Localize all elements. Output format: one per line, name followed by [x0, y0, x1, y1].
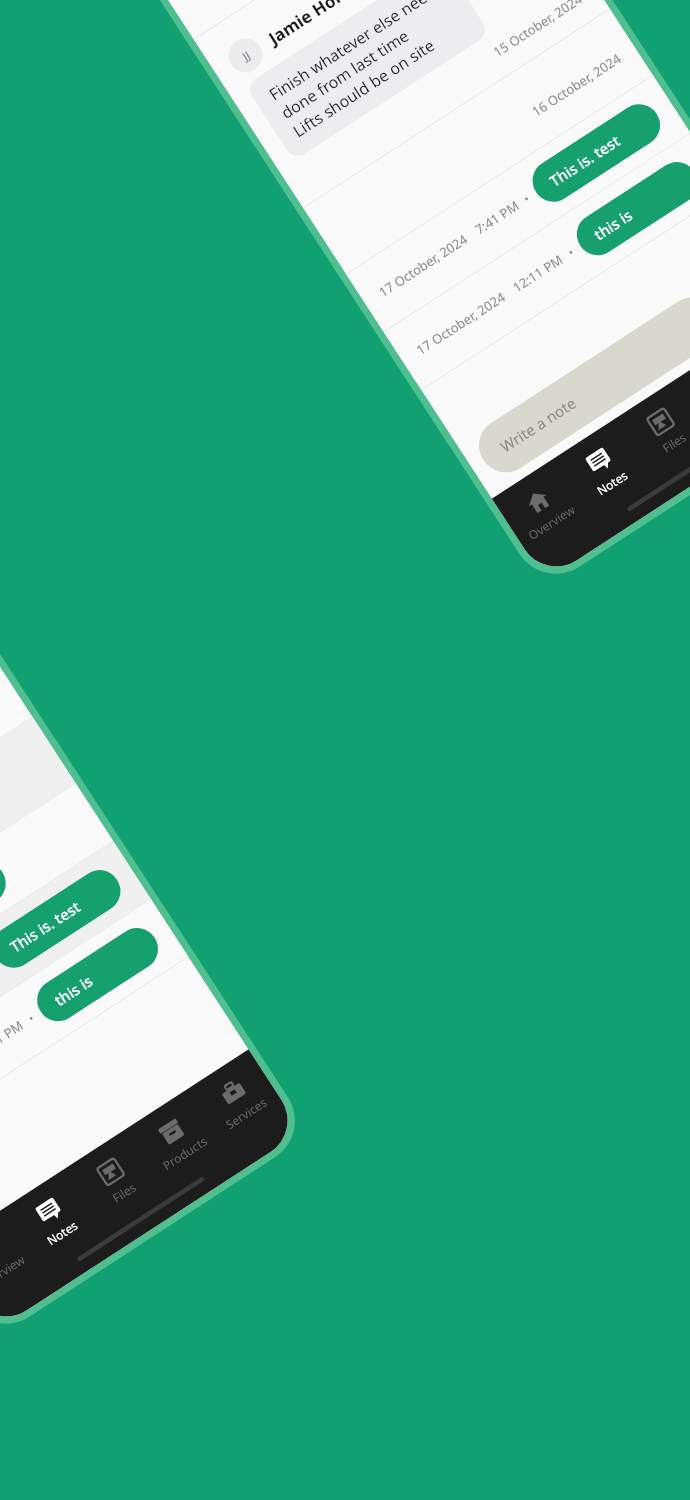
staticText: this is obaydul — [590, 173, 685, 244]
staticText: 12:11 PM — [509, 250, 567, 296]
staticText: 12:11 PM — [0, 1016, 27, 1062]
staticText: 17 October, 2024 — [413, 288, 509, 359]
button[interactable]: Files — [622, 389, 690, 473]
button[interactable]: Notes — [10, 1179, 100, 1263]
button[interactable]: needs to be — [0, 717, 75, 982]
staticText: Overview — [0, 1251, 28, 1293]
button[interactable]: Overview — [0, 1219, 38, 1303]
staticText: Files — [109, 1179, 139, 1206]
staticText: 7:41 PM — [471, 197, 522, 238]
staticText: 15 October, 2024 — [490, 0, 586, 61]
button[interactable]: Write a note — [469, 287, 690, 483]
button[interactable]: 17 October, 2024 — [346, 75, 690, 332]
staticText: done from last time — [277, 25, 413, 124]
button[interactable]: Notes — [560, 429, 650, 513]
button[interactable]: Overview — [499, 469, 588, 553]
button[interactable]: Products — [133, 1100, 222, 1183]
button[interactable]: this is obaydul — [569, 154, 690, 263]
staticText: this is obaydul — [50, 939, 145, 1010]
button[interactable]: 16 October, 2024 — [0, 841, 151, 1098]
button[interactable]: Products — [683, 350, 690, 433]
staticText: Products — [159, 1132, 210, 1173]
button[interactable]: Hi — [0, 854, 14, 918]
button[interactable]: this is obaydul — [29, 920, 166, 1029]
button[interactable]: Files — [72, 1139, 161, 1223]
button[interactable]: 17 October, 2024 — [0, 899, 188, 1156]
staticText: Finish whatever else needs — [265, 0, 446, 105]
staticText: This is. test note — [546, 115, 647, 191]
staticText: Overview — [525, 501, 578, 543]
staticText: Lifts should be on site — [289, 34, 439, 142]
staticText: Jamie Hoffman — [264, 0, 383, 50]
staticText: 17 October, 2024 — [375, 230, 471, 301]
staticText: 16 October, 2024 — [528, 49, 625, 120]
button[interactable]: 15 October, 2024 — [0, 783, 113, 1040]
staticText: Services — [222, 1094, 270, 1132]
button[interactable]: 17 October, 2024 — [384, 133, 690, 390]
staticText: Files — [659, 429, 689, 456]
staticText: JJ — [239, 47, 253, 64]
staticText: This is. test note — [6, 881, 107, 957]
staticText: Notes — [44, 1216, 81, 1248]
button[interactable]: This is. test note — [0, 862, 128, 976]
button[interactable]: +1 615 2936727 — [0, 587, 3, 884]
button[interactable]: Services — [194, 1060, 283, 1144]
button[interactable]: This is. test note — [524, 96, 668, 210]
staticText: Notes — [594, 466, 631, 498]
staticText: Write a note — [496, 392, 580, 456]
button[interactable]: Finish whatever else needs — [245, 0, 490, 161]
